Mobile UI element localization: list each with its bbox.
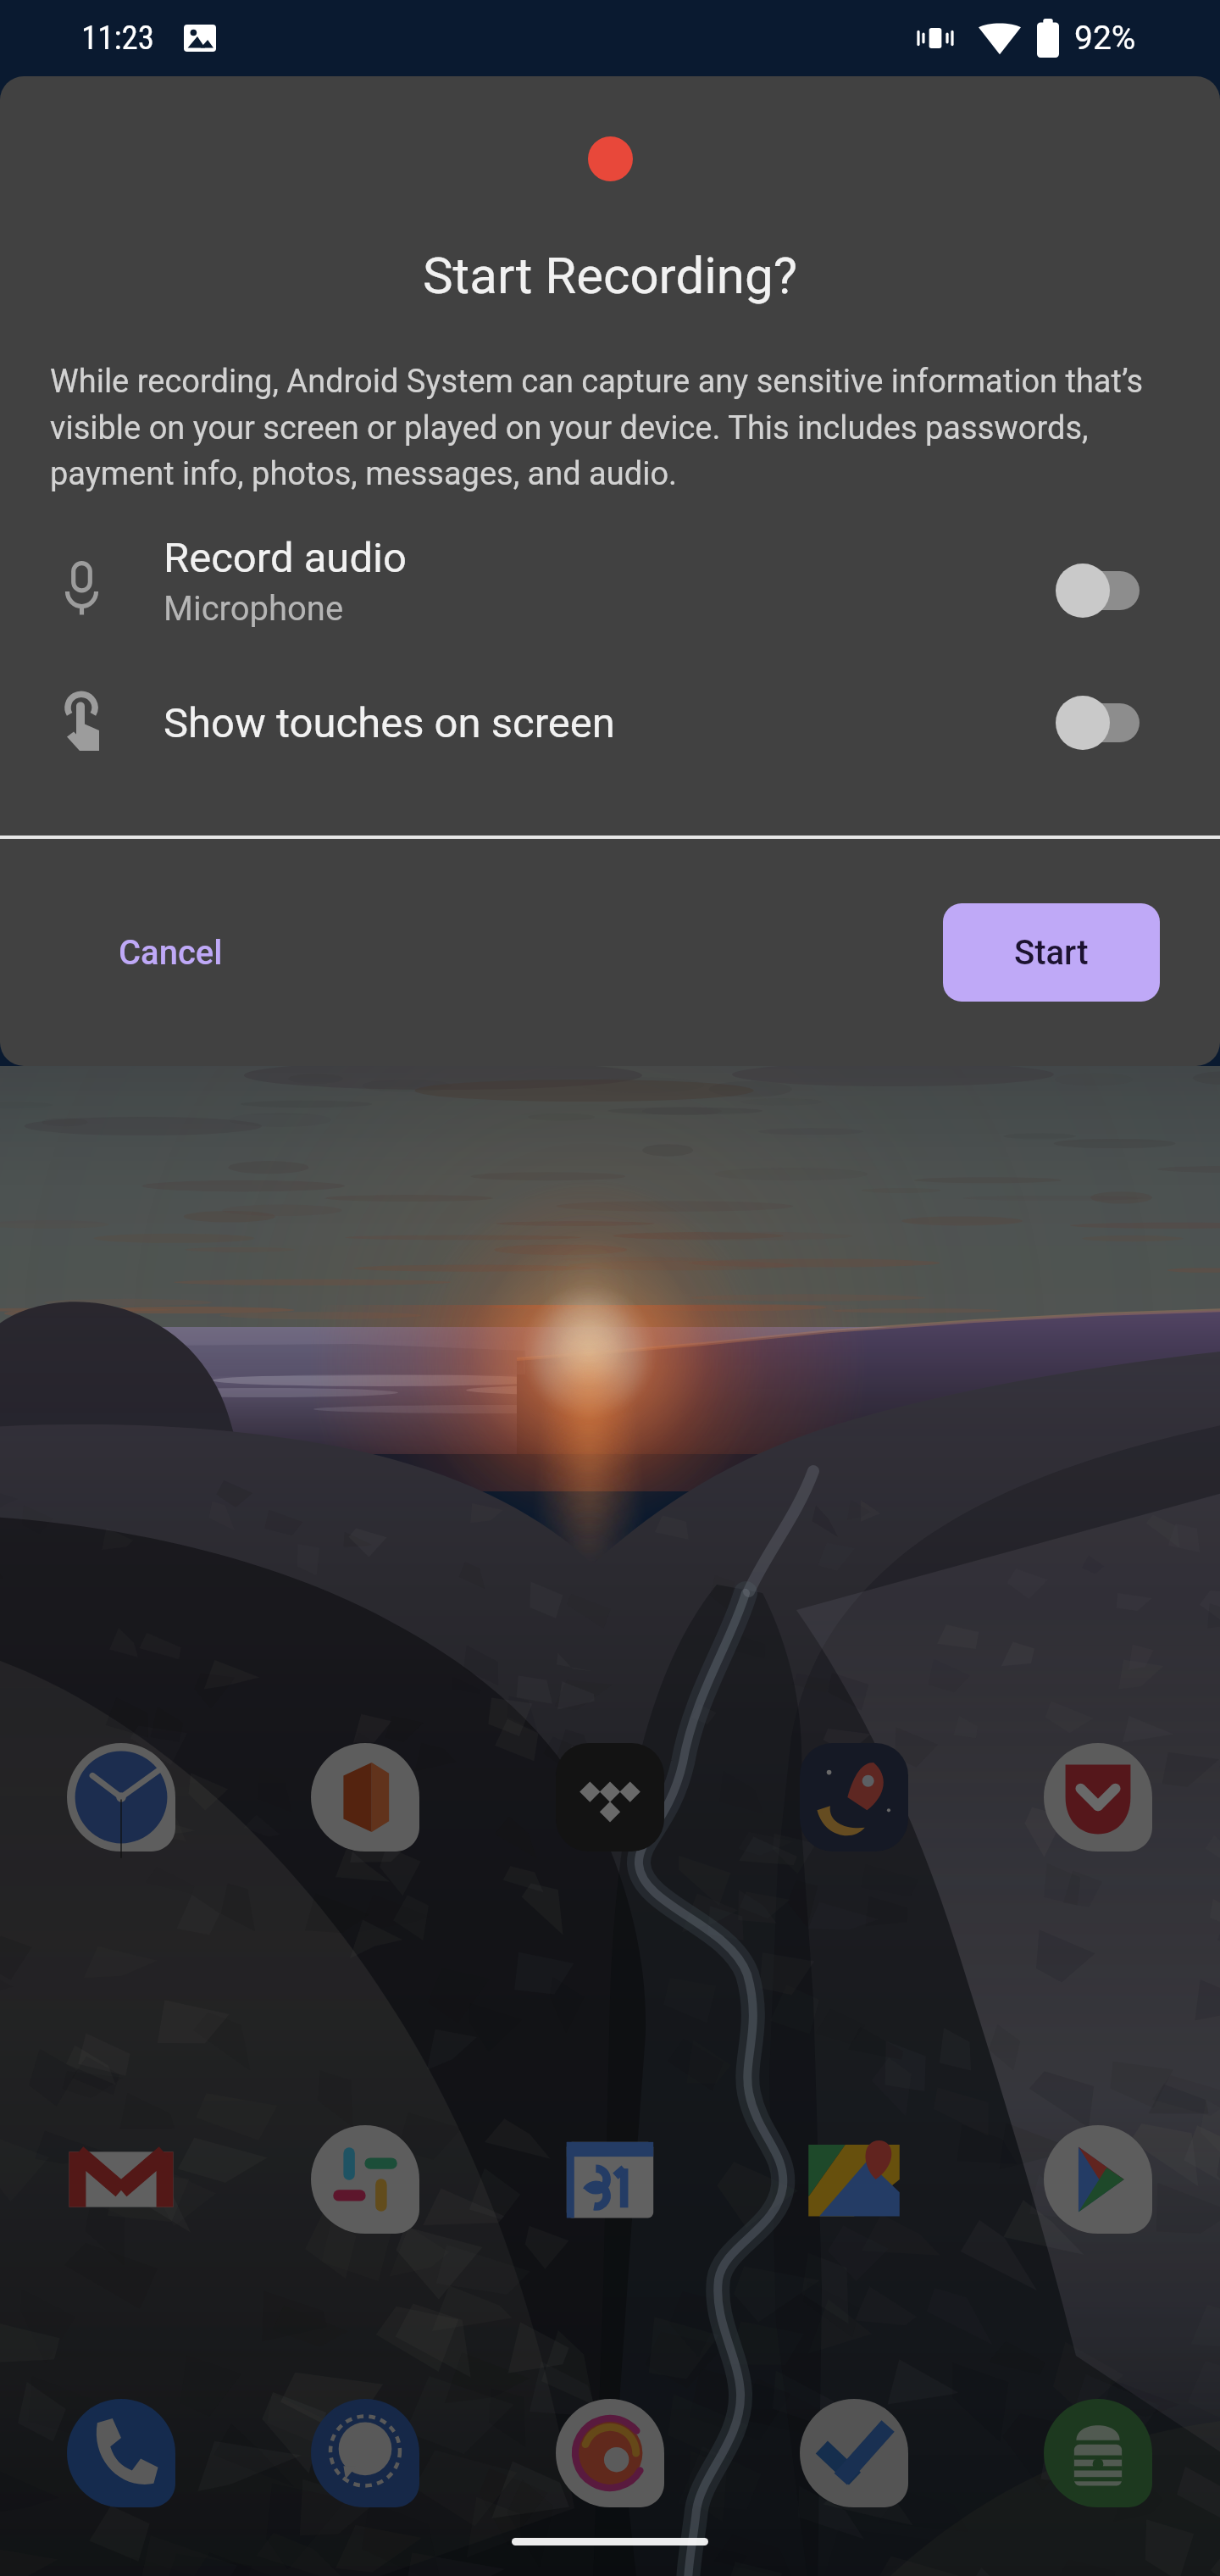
staticText: Cancel <box>119 933 223 973</box>
button[interactable]: Office <box>311 1743 419 1851</box>
staticText: Record audio <box>164 534 407 582</box>
staticText: Show touches on screen <box>164 699 615 747</box>
button[interactable]: Slack <box>311 2125 419 2234</box>
button[interactable]: Signal <box>311 2399 419 2507</box>
button[interactable]: Firefox <box>556 2399 664 2507</box>
button[interactable]: KeePass <box>1044 2399 1152 2507</box>
button[interactable]: Rocket <box>800 1743 908 1851</box>
staticText: Start <box>1014 933 1089 973</box>
button[interactable]: Clock <box>67 1743 175 1851</box>
staticText: 11:23 <box>81 19 155 58</box>
button[interactable]: Phone <box>67 2399 175 2507</box>
button[interactable]: Tidal <box>556 1743 664 1851</box>
button[interactable]: Pocket <box>1044 1743 1152 1851</box>
button[interactable]: Cancel <box>80 909 262 997</box>
button[interactable]: Play Store <box>1044 2125 1152 2234</box>
staticText: 92% <box>1074 19 1136 58</box>
button[interactable]: Calendar <box>556 2125 664 2234</box>
staticText: While recording, Android System can capt… <box>50 363 1179 492</box>
button[interactable]: Show touches on screen <box>0 659 1220 786</box>
button[interactable]: Show touches on screen <box>1056 693 1140 752</box>
button[interactable]: Start <box>943 903 1160 1002</box>
button[interactable]: Record audio <box>0 502 1220 659</box>
button[interactable]: Record audio <box>1056 561 1140 620</box>
button[interactable]: Maps <box>800 2125 908 2234</box>
staticText: Start Recording? <box>0 246 1220 305</box>
staticText: Microphone <box>164 589 344 629</box>
button[interactable]: Tasks <box>800 2399 908 2507</box>
button[interactable]: Gmail <box>67 2125 175 2234</box>
